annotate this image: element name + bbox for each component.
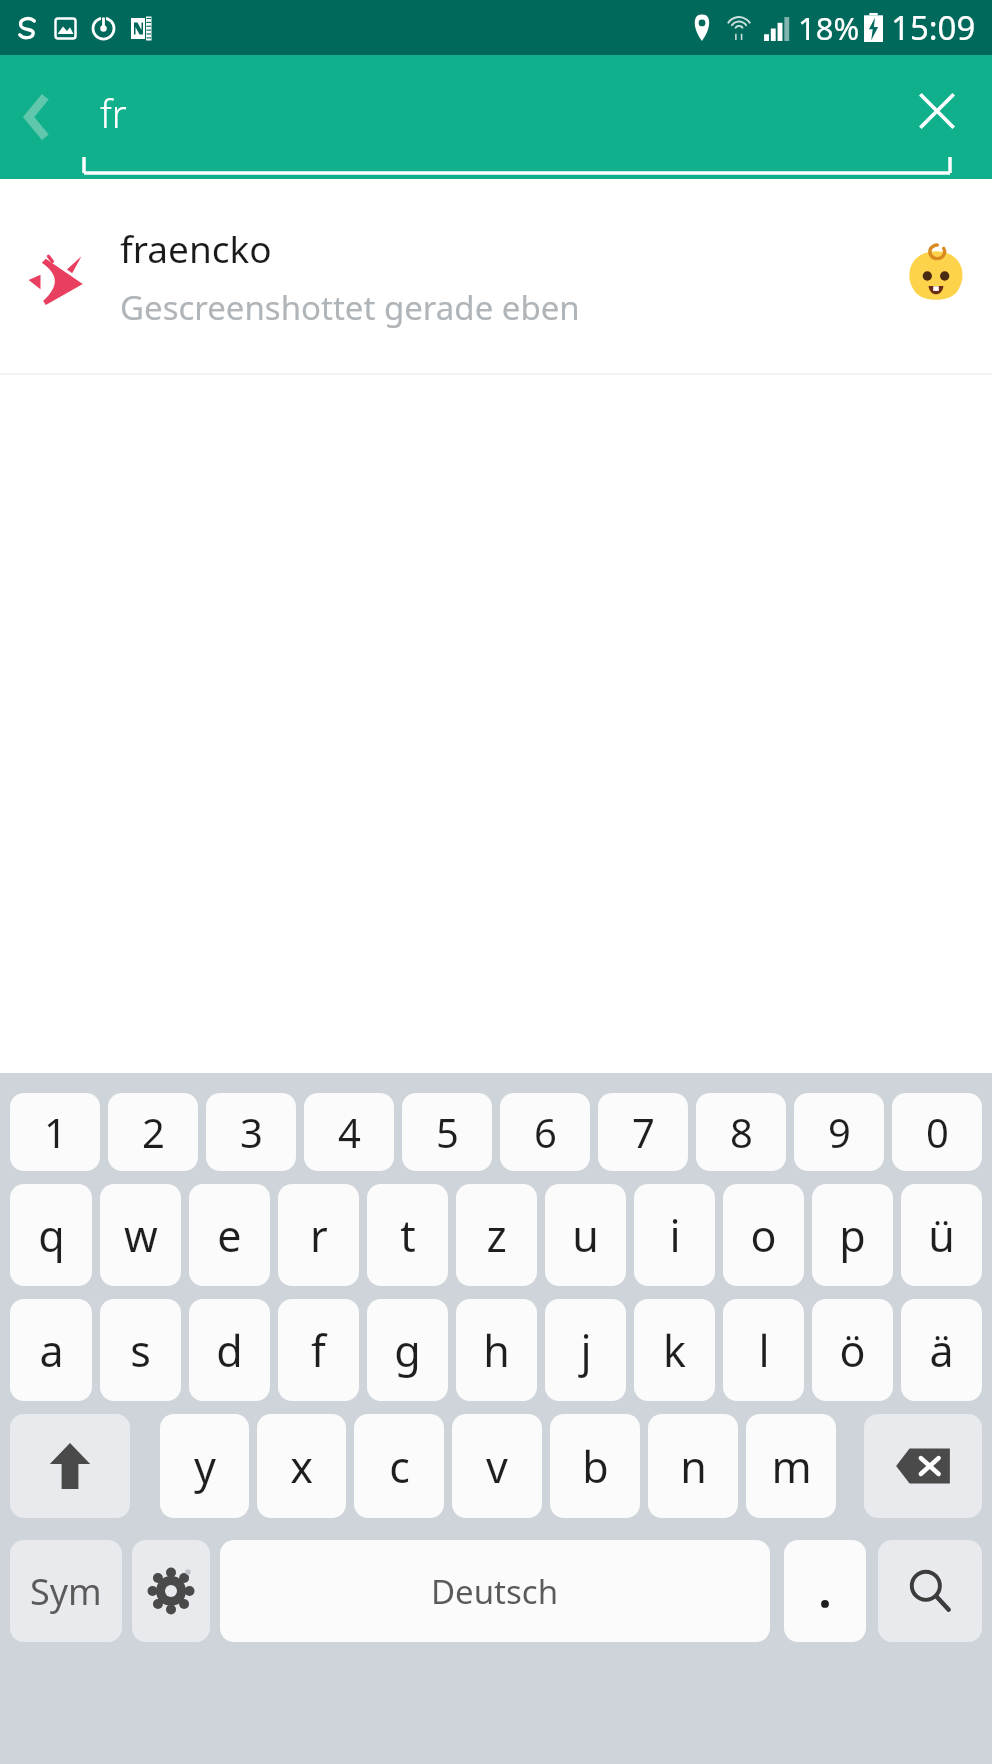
staticText: h — [483, 1321, 510, 1380]
button[interactable]: u — [545, 1184, 626, 1286]
button[interactable]: Keyboard settings — [132, 1540, 210, 1642]
staticText: Sym — [30, 1567, 102, 1616]
button[interactable]: Search — [878, 1540, 982, 1642]
staticText: Deutsch — [431, 1569, 559, 1614]
button[interactable]: a — [10, 1299, 92, 1401]
button[interactable]: k — [634, 1299, 715, 1401]
button[interactable]: 9 — [794, 1093, 884, 1171]
button[interactable]: m — [746, 1414, 836, 1518]
staticText: w — [124, 1206, 158, 1265]
button[interactable]: s — [100, 1299, 181, 1401]
staticText: r — [310, 1206, 328, 1265]
staticText: p — [839, 1206, 866, 1265]
button[interactable]: ü — [901, 1184, 982, 1286]
staticText: 5 — [436, 1105, 459, 1159]
button[interactable]: fraencko — [0, 179, 992, 373]
staticText: ü — [928, 1206, 955, 1265]
button[interactable]: j — [545, 1299, 626, 1401]
button[interactable]: e — [189, 1184, 270, 1286]
button[interactable]: g — [367, 1299, 448, 1401]
staticText: ö — [839, 1321, 866, 1380]
button[interactable] — [784, 1540, 866, 1642]
button[interactable]: 3 — [206, 1093, 296, 1171]
staticText: 15:09 — [891, 5, 976, 50]
staticText: 4 — [338, 1105, 361, 1159]
staticText: s — [130, 1321, 151, 1380]
staticText: z — [486, 1206, 507, 1265]
staticText: ä — [929, 1321, 954, 1380]
staticText: b — [582, 1437, 609, 1496]
staticText: fr — [100, 87, 127, 139]
staticText: 8 — [730, 1105, 753, 1159]
button[interactable]: v — [452, 1414, 542, 1518]
button[interactable]: z — [456, 1184, 537, 1286]
button[interactable]: c — [354, 1414, 444, 1518]
staticText: 18% — [798, 7, 860, 49]
button[interactable]: 0 — [892, 1093, 982, 1171]
staticText: 6 — [534, 1105, 557, 1159]
button[interactable]: Shift — [10, 1414, 130, 1518]
staticText: 9 — [828, 1105, 851, 1159]
button[interactable]: 8 — [696, 1093, 786, 1171]
staticText: a — [39, 1321, 64, 1380]
staticText: 7 — [632, 1105, 655, 1159]
button[interactable]: d — [189, 1299, 270, 1401]
button[interactable]: b — [550, 1414, 640, 1518]
button[interactable]: i — [634, 1184, 715, 1286]
staticText: m — [771, 1437, 812, 1496]
button[interactable]: t — [367, 1184, 448, 1286]
button[interactable]: Clear search — [882, 55, 992, 179]
staticText: v — [486, 1437, 508, 1496]
button[interactable]: y — [160, 1414, 249, 1518]
button[interactable]: f — [278, 1299, 359, 1401]
staticText: n — [680, 1437, 707, 1496]
button[interactable]: Baby emoji status — [880, 179, 992, 373]
button[interactable]: Back — [0, 55, 74, 179]
staticText: 3 — [240, 1105, 263, 1159]
button[interactable]: n — [648, 1414, 738, 1518]
button[interactable]: 2 — [108, 1093, 198, 1171]
staticText: k — [663, 1321, 686, 1380]
button[interactable]: 4 — [304, 1093, 394, 1171]
staticText: x — [290, 1437, 313, 1496]
button[interactable]: ö — [812, 1299, 893, 1401]
staticText: t — [400, 1206, 416, 1265]
button[interactable]: x — [257, 1414, 346, 1518]
staticText: i — [669, 1206, 681, 1265]
button[interactable]: 5 — [402, 1093, 492, 1171]
staticText: fraencko — [120, 223, 272, 273]
button[interactable]: o — [723, 1184, 804, 1286]
button[interactable]: Sym — [10, 1540, 122, 1642]
staticText: e — [217, 1206, 242, 1265]
button[interactable]: Backspace — [864, 1414, 982, 1518]
staticText: c — [389, 1437, 410, 1496]
staticText: j — [580, 1321, 592, 1380]
staticText: Gescreenshottet gerade eben — [120, 285, 580, 330]
button[interactable]: q — [10, 1184, 92, 1286]
button[interactable]: 1 — [10, 1093, 100, 1171]
button[interactable]: Deutsch — [220, 1540, 770, 1642]
staticText: f — [311, 1321, 326, 1380]
staticText: q — [38, 1206, 65, 1265]
staticText: l — [758, 1321, 770, 1380]
staticText: o — [750, 1206, 777, 1265]
staticText: 2 — [142, 1105, 165, 1159]
button[interactable]: 7 — [598, 1093, 688, 1171]
button[interactable]: w — [100, 1184, 181, 1286]
staticText: u — [572, 1206, 599, 1265]
button[interactable]: l — [723, 1299, 804, 1401]
staticText: d — [216, 1321, 243, 1380]
button[interactable]: r — [278, 1184, 359, 1286]
staticText: g — [394, 1321, 421, 1380]
button[interactable]: h — [456, 1299, 537, 1401]
button[interactable]: 6 — [500, 1093, 590, 1171]
staticText: 1 — [44, 1105, 67, 1159]
staticText: 0 — [926, 1105, 949, 1159]
button[interactable]: ä — [901, 1299, 982, 1401]
staticText: y — [194, 1437, 216, 1496]
button[interactable]: p — [812, 1184, 893, 1286]
